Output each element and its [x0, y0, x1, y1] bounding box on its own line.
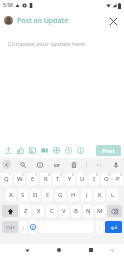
button[interactable]: G: [55, 189, 66, 201]
button[interactable]: Voice input: [111, 160, 121, 170]
staticText: X: [37, 207, 41, 215]
staticText: S: [21, 191, 25, 199]
button[interactable]: Enter: [105, 221, 122, 233]
staticText: B: [74, 207, 78, 215]
button[interactable]: Search: [18, 160, 28, 170]
staticText: L: [111, 191, 115, 199]
staticText: GIF: [54, 163, 60, 168]
staticText: R: [44, 175, 48, 183]
button[interactable]: Clipboard: [69, 160, 79, 170]
button[interactable]: Post: [96, 145, 121, 156]
button[interactable]: Sticker: [35, 160, 45, 170]
button[interactable]: Back: [2, 160, 11, 169]
staticText: V: [62, 207, 66, 215]
button[interactable]: C: [46, 205, 57, 217]
button[interactable]: J: [81, 189, 92, 201]
button[interactable]: Attach file: [3, 145, 14, 156]
staticText: J: [86, 191, 88, 199]
button[interactable]: Comma: [20, 221, 27, 233]
staticText: 8: [96, 173, 98, 177]
staticText: Compose your update here: [8, 40, 86, 48]
staticText: K: [98, 191, 102, 199]
button[interactable]: Shift: [2, 205, 18, 217]
staticText: H: [71, 191, 76, 199]
button[interactable]: Z: [20, 205, 31, 217]
staticText: ,: [23, 223, 25, 231]
staticText: M: [97, 207, 103, 215]
staticText: .: [99, 223, 101, 231]
button[interactable]: I: [89, 173, 99, 185]
staticText: 3: [35, 173, 37, 177]
button[interactable]: Profile: [4, 16, 13, 25]
button[interactable]: R: [40, 173, 51, 185]
button[interactable]: Emoji: [29, 221, 37, 233]
button[interactable]: GIF: [52, 160, 62, 170]
staticText: 2: [22, 173, 24, 177]
staticText: A: [9, 191, 13, 199]
button[interactable]: Like: [15, 145, 26, 156]
button[interactable]: ?123: [2, 221, 18, 233]
button[interactable]: Hide keyboard: [107, 245, 117, 255]
button[interactable]: B: [71, 205, 81, 217]
staticText: 1: [9, 173, 11, 177]
button[interactable]: Home: [54, 245, 64, 255]
staticText: 0: [120, 173, 122, 177]
button[interactable]: Back: [22, 245, 32, 255]
staticText: ?123: [6, 225, 15, 230]
staticText: F: [46, 191, 50, 199]
button[interactable]: O: [101, 173, 111, 185]
staticText: D: [33, 191, 38, 199]
button[interactable]: Q: [1, 173, 12, 185]
button[interactable]: Video: [39, 145, 50, 156]
staticText: 4: [48, 173, 50, 177]
button[interactable]: L: [107, 189, 118, 201]
staticText: P: [116, 175, 120, 183]
button[interactable]: M: [95, 205, 105, 217]
staticText: E: [31, 175, 35, 183]
staticText: Z: [24, 207, 28, 215]
button[interactable]: V: [59, 205, 69, 217]
button[interactable]: H: [68, 189, 79, 201]
staticText: U: [80, 175, 85, 183]
staticText: N: [86, 207, 91, 215]
staticText: G: [58, 191, 63, 199]
button[interactable]: N: [83, 205, 93, 217]
staticText: 7: [84, 173, 86, 177]
button[interactable]: A: [6, 189, 16, 201]
staticText: O: [104, 175, 109, 183]
staticText: Y: [68, 175, 72, 183]
staticText: 5:58: [3, 2, 13, 9]
staticText: Post: [102, 147, 115, 155]
button[interactable]: Backspace: [107, 205, 122, 217]
button[interactable]: Close: [106, 14, 120, 28]
button[interactable]: D: [30, 189, 40, 201]
button[interactable]: E: [27, 173, 38, 185]
staticText: I: [93, 175, 96, 183]
button[interactable]: Photo: [27, 145, 38, 156]
staticText: W: [17, 175, 23, 183]
button[interactable]: Time: [63, 145, 74, 156]
button[interactable]: Recent apps: [86, 245, 96, 255]
button[interactable]: Info: [75, 145, 86, 156]
button[interactable]: W: [14, 173, 25, 185]
button[interactable]: P: [113, 173, 123, 185]
button[interactable]: K: [94, 189, 105, 201]
staticText: Post an Update: [17, 16, 106, 26]
staticText: T: [56, 175, 60, 183]
staticText: 6: [72, 173, 74, 177]
button[interactable]: T: [53, 173, 63, 185]
staticText: Q: [4, 175, 9, 183]
button[interactable]: S: [18, 189, 28, 201]
button[interactable]: Link: [51, 145, 62, 156]
staticText: 9: [108, 173, 110, 177]
button[interactable]: More options: [94, 160, 104, 170]
button[interactable]: U: [77, 173, 87, 185]
button[interactable]: F: [42, 189, 53, 201]
button[interactable]: X: [33, 205, 44, 217]
button[interactable]: Y: [65, 173, 75, 185]
button[interactable]: Period: [96, 221, 103, 233]
staticText: 5: [60, 173, 62, 177]
staticText: C: [50, 207, 54, 215]
